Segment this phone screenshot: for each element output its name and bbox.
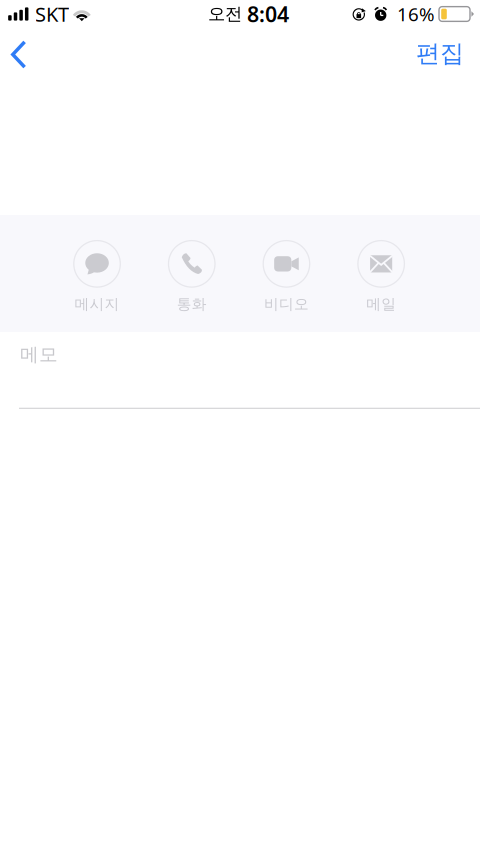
staticText: 통화	[177, 295, 207, 313]
button[interactable]: 메일	[334, 241, 428, 313]
staticText: 8:04	[247, 0, 289, 28]
staticText: 메모	[20, 343, 58, 366]
staticText: 비디오	[264, 295, 309, 313]
staticText: 메일	[366, 295, 396, 313]
button[interactable]: 편집	[394, 25, 480, 78]
button[interactable]: 메모	[0, 332, 480, 409]
staticText: 16%	[397, 2, 435, 26]
button[interactable]: Back	[0, 29, 46, 74]
button[interactable]: 통화	[144, 241, 239, 313]
staticText: SKT	[35, 1, 69, 27]
button[interactable]: 메시지	[50, 241, 144, 313]
staticText: 편집	[416, 39, 464, 68]
staticText: 오전	[208, 3, 242, 25]
button[interactable]: 비디오	[239, 241, 334, 313]
staticText: 메시지	[75, 295, 120, 313]
